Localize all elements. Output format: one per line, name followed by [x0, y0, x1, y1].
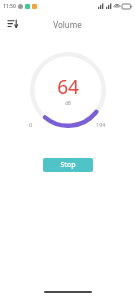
button[interactable]: Sort [2, 13, 24, 35]
staticText: 0 [29, 121, 33, 128]
staticText: Volume [53, 19, 82, 30]
button[interactable]: Stop [43, 158, 93, 172]
staticText: 194 [96, 121, 106, 128]
staticText: 11:50 [3, 3, 16, 10]
staticText: dB [65, 100, 71, 106]
staticText: Stop [60, 160, 76, 170]
staticText: 64 [57, 74, 79, 100]
